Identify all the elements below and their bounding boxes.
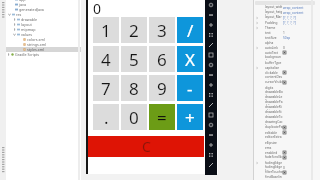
button[interactable]: mipmap xyxy=(6,27,81,32)
button[interactable]: duplicateParent xyxy=(253,125,320,130)
staticText: drawableTop xyxy=(265,115,283,120)
button[interactable]: Blueprint xyxy=(205,80,217,90)
staticText: [?, ?, ?, ?] xyxy=(283,21,296,25)
staticText: autoLink xyxy=(265,46,279,50)
button[interactable]: layout xyxy=(6,22,81,27)
button[interactable]: strings.xml xyxy=(6,42,81,47)
button[interactable]: capitalize xyxy=(253,65,320,70)
button[interactable]: drawableBottom xyxy=(253,90,320,95)
button[interactable]: digits xyxy=(253,85,320,90)
button[interactable]: res xyxy=(6,12,81,17)
button[interactable]: Zoom in xyxy=(205,40,217,50)
button[interactable]: - xyxy=(177,75,203,101)
button[interactable]: Device xyxy=(205,10,217,20)
button[interactable]: fadingEdgeLen xyxy=(253,165,320,170)
staticText: cursorVisible xyxy=(265,80,283,85)
staticText: clickable xyxy=(265,71,278,75)
button[interactable]: ellipsize xyxy=(253,140,320,145)
button[interactable]: Baseline xyxy=(205,130,217,140)
button[interactable]: Chains xyxy=(205,140,217,150)
button[interactable]: Build Variants tool window xyxy=(0,145,6,175)
staticText: drawingCache xyxy=(265,120,283,125)
staticText: drawable xyxy=(21,17,38,22)
button[interactable]: 8 xyxy=(121,75,147,101)
button[interactable]: values xyxy=(6,32,81,37)
button[interactable]: drawableLeft xyxy=(253,95,320,100)
button[interactable]: drawable xyxy=(6,17,81,22)
staticText: layout_height xyxy=(265,10,283,15)
staticText: X xyxy=(185,48,195,71)
button[interactable]: textSize xyxy=(253,35,320,40)
button[interactable]: Distribute xyxy=(205,110,217,120)
button[interactable]: Theme xyxy=(253,25,320,30)
button[interactable]: Project tool window xyxy=(0,0,6,19)
button[interactable]: drawableTop xyxy=(253,115,320,120)
button[interactable]: = xyxy=(149,104,175,130)
button[interactable]: background xyxy=(253,55,320,60)
button[interactable]: editable xyxy=(253,130,320,135)
button[interactable]: cursorVisible xyxy=(253,80,320,85)
button[interactable]: + xyxy=(177,104,203,130)
button[interactable]: Select xyxy=(205,0,217,10)
button[interactable]: Gradle Scripts xyxy=(6,52,81,57)
button[interactable]: Grid xyxy=(205,30,217,40)
staticText: app xyxy=(19,0,26,2)
button[interactable]: Layout xyxy=(205,70,217,80)
button[interactable]: bufferType xyxy=(253,60,320,65)
button[interactable]: java xyxy=(6,2,81,7)
button[interactable]: alpha xyxy=(253,40,320,45)
button[interactable]: 0 xyxy=(121,104,147,130)
button[interactable]: X xyxy=(177,46,203,72)
button[interactable]: 7 xyxy=(93,75,119,101)
button[interactable]: Settings xyxy=(205,160,217,170)
staticText: autoText xyxy=(265,51,278,55)
button[interactable]: layout_Margin xyxy=(253,15,320,20)
button[interactable]: Margins xyxy=(205,150,217,160)
button[interactable]: Align xyxy=(205,100,217,110)
button[interactable]: Padding xyxy=(253,20,320,25)
button[interactable]: 6 xyxy=(149,46,175,72)
button[interactable]: drawableRight xyxy=(253,105,320,110)
button[interactable]: . xyxy=(93,104,119,130)
button[interactable]: 9 xyxy=(149,75,175,101)
button[interactable]: Constraints xyxy=(205,90,217,100)
button[interactable]: 5 xyxy=(121,46,147,72)
button[interactable]: 3 xyxy=(149,17,175,43)
button[interactable]: Pan xyxy=(205,60,217,70)
button[interactable]: fadeScrollbars xyxy=(253,155,320,160)
button[interactable]: drawingCache xyxy=(253,120,320,125)
button[interactable]: editorExtras xyxy=(253,135,320,140)
button[interactable]: fadingEdge xyxy=(253,160,320,165)
button[interactable]: 2 xyxy=(121,17,147,43)
button[interactable]: colors.xml xyxy=(6,37,81,42)
button[interactable]: / xyxy=(177,17,203,43)
staticText: Padding xyxy=(265,21,278,25)
button[interactable]: filterTouches xyxy=(253,170,320,175)
button[interactable]: Guidelines xyxy=(205,120,217,130)
button[interactable]: drawableStart xyxy=(253,110,320,115)
button[interactable]: firstBaseline xyxy=(253,175,320,180)
button[interactable]: drawablePaddin xyxy=(253,100,320,105)
staticText: background xyxy=(265,55,283,60)
button[interactable]: layout_height xyxy=(253,10,320,15)
button[interactable]: styles.xml xyxy=(6,47,81,52)
staticText: 3 xyxy=(157,19,167,42)
button[interactable]: Zoom out xyxy=(205,50,217,60)
button[interactable]: autoLink xyxy=(253,45,320,50)
button[interactable]: 1 xyxy=(93,17,119,43)
button[interactable]: C xyxy=(88,136,204,157)
button[interactable]: Move xyxy=(205,20,217,30)
button[interactable]: generatedJava xyxy=(6,7,81,12)
button[interactable]: contentDescrip xyxy=(253,75,320,80)
button[interactable]: 4 xyxy=(93,46,119,72)
staticText: 7 xyxy=(101,77,111,100)
button[interactable]: clickable xyxy=(253,70,320,75)
button[interactable]: ems xyxy=(253,145,320,150)
button[interactable]: enabled xyxy=(253,150,320,155)
button[interactable]: layout_width xyxy=(253,5,320,10)
button[interactable]: text xyxy=(253,30,320,35)
button[interactable]: app xyxy=(6,0,81,2)
button[interactable]: autoText xyxy=(253,50,320,55)
staticText: + xyxy=(185,106,195,129)
